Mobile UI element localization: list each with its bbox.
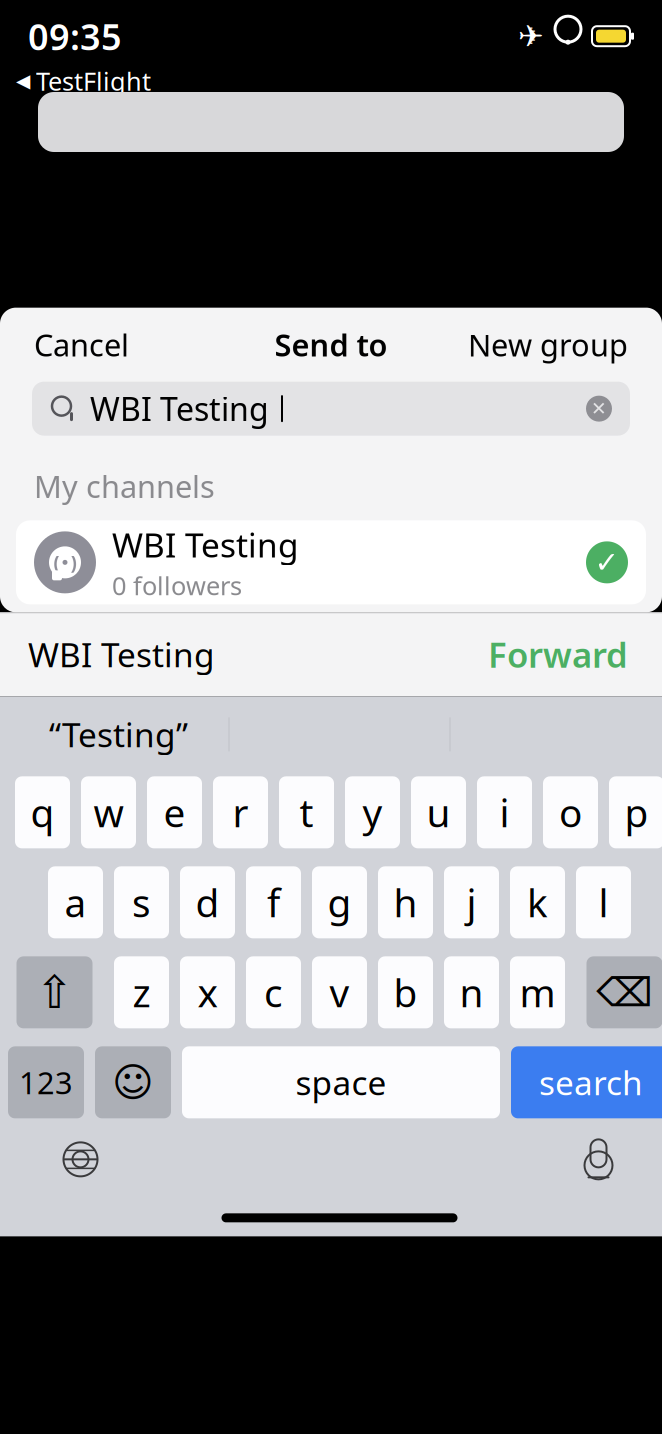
staticText: “Testing” [49, 712, 188, 756]
button[interactable]: i [477, 776, 532, 848]
staticText: e [163, 787, 185, 838]
staticText: space [295, 1060, 386, 1104]
button[interactable]: g [312, 866, 367, 938]
staticText: d [195, 877, 219, 928]
button[interactable]: Next keyboard [60, 1139, 100, 1179]
staticText: z [132, 967, 150, 1018]
staticText: w [93, 787, 123, 838]
button[interactable]: q [15, 776, 70, 848]
staticText: Send to [274, 324, 387, 365]
staticText: My channels [34, 466, 215, 506]
button[interactable]: Clear text [586, 396, 612, 422]
button[interactable]: y [345, 776, 400, 848]
staticText: search [539, 1060, 643, 1104]
button[interactable]: n [444, 956, 499, 1028]
staticText: y [362, 787, 382, 838]
button[interactable]: p [609, 776, 662, 848]
button[interactable]: e [147, 776, 202, 848]
staticText: j [466, 877, 476, 928]
staticText: v [329, 967, 349, 1018]
staticText: ) [70, 550, 76, 575]
button[interactable]: d [180, 866, 235, 938]
staticText: ⌫ [596, 970, 653, 1015]
button[interactable]: j [444, 866, 499, 938]
staticText: k [527, 877, 548, 928]
button[interactable]: New group [458, 316, 638, 373]
staticText: ✓ [594, 546, 619, 579]
staticText: n [459, 967, 483, 1018]
staticText: 0 followers [112, 569, 242, 602]
staticText: f [267, 877, 280, 928]
button[interactable]: x [180, 956, 235, 1028]
button[interactable]: a [48, 866, 103, 938]
staticText: ⇧ [35, 967, 73, 1018]
button[interactable]: search [511, 1046, 662, 1118]
button[interactable]: Dictation [578, 1136, 618, 1182]
button[interactable]: k [510, 866, 565, 938]
staticText: p [624, 787, 648, 838]
staticText: x [197, 967, 217, 1018]
staticText: WBI Testing [112, 522, 299, 567]
staticText: WBI Testing [90, 387, 269, 430]
button[interactable]: h [378, 866, 433, 938]
button[interactable]: l [576, 866, 631, 938]
button[interactable]: b [378, 956, 433, 1028]
staticText: TestFlight [36, 64, 151, 98]
button[interactable]: Emoji [95, 1046, 171, 1118]
button[interactable]: c [246, 956, 301, 1028]
staticText: 09:35 [28, 12, 122, 60]
button[interactable]: z [114, 956, 169, 1028]
button[interactable]: Forward [482, 623, 634, 685]
button[interactable]: v [312, 956, 367, 1028]
staticText: ✕ [591, 398, 607, 419]
button[interactable]: u [411, 776, 466, 848]
staticText: g [327, 877, 351, 928]
button[interactable]: o [543, 776, 598, 848]
staticText: ( [53, 550, 59, 575]
staticText: t [299, 787, 313, 838]
button[interactable]: space [182, 1046, 500, 1118]
button[interactable]: 123 [8, 1046, 84, 1118]
button[interactable]: Shift [16, 956, 92, 1028]
button[interactable]: ( [16, 520, 646, 604]
staticText: o [559, 787, 582, 838]
staticText: s [132, 877, 151, 928]
button[interactable]: r [213, 776, 268, 848]
staticText: h [393, 877, 417, 928]
button[interactable]: t [279, 776, 334, 848]
staticText: c [264, 967, 283, 1018]
button[interactable]: s [114, 866, 169, 938]
staticText: New group [468, 324, 628, 365]
staticText: m [519, 967, 555, 1018]
staticText: b [393, 967, 417, 1018]
staticText: Forward [488, 631, 628, 677]
button[interactable]: Cancel [24, 316, 139, 373]
staticText: u [426, 787, 450, 838]
staticText: ✈ [518, 19, 544, 54]
button[interactable]: w [81, 776, 136, 848]
staticText: r [232, 787, 248, 838]
staticText: i [499, 787, 509, 838]
button[interactable]: m [510, 956, 565, 1028]
staticText: q [30, 787, 54, 838]
staticText: ☺ [112, 1060, 154, 1105]
staticText: Cancel [34, 324, 129, 365]
staticText: WBI Testing [28, 632, 215, 676]
staticText: 123 [19, 1062, 73, 1103]
staticText: ◀ [16, 70, 30, 91]
staticText: a [64, 877, 86, 928]
button[interactable]: f [246, 866, 301, 938]
button[interactable]: Delete [586, 956, 662, 1028]
button[interactable]: “Testing” [8, 706, 228, 762]
staticText: l [598, 877, 608, 928]
